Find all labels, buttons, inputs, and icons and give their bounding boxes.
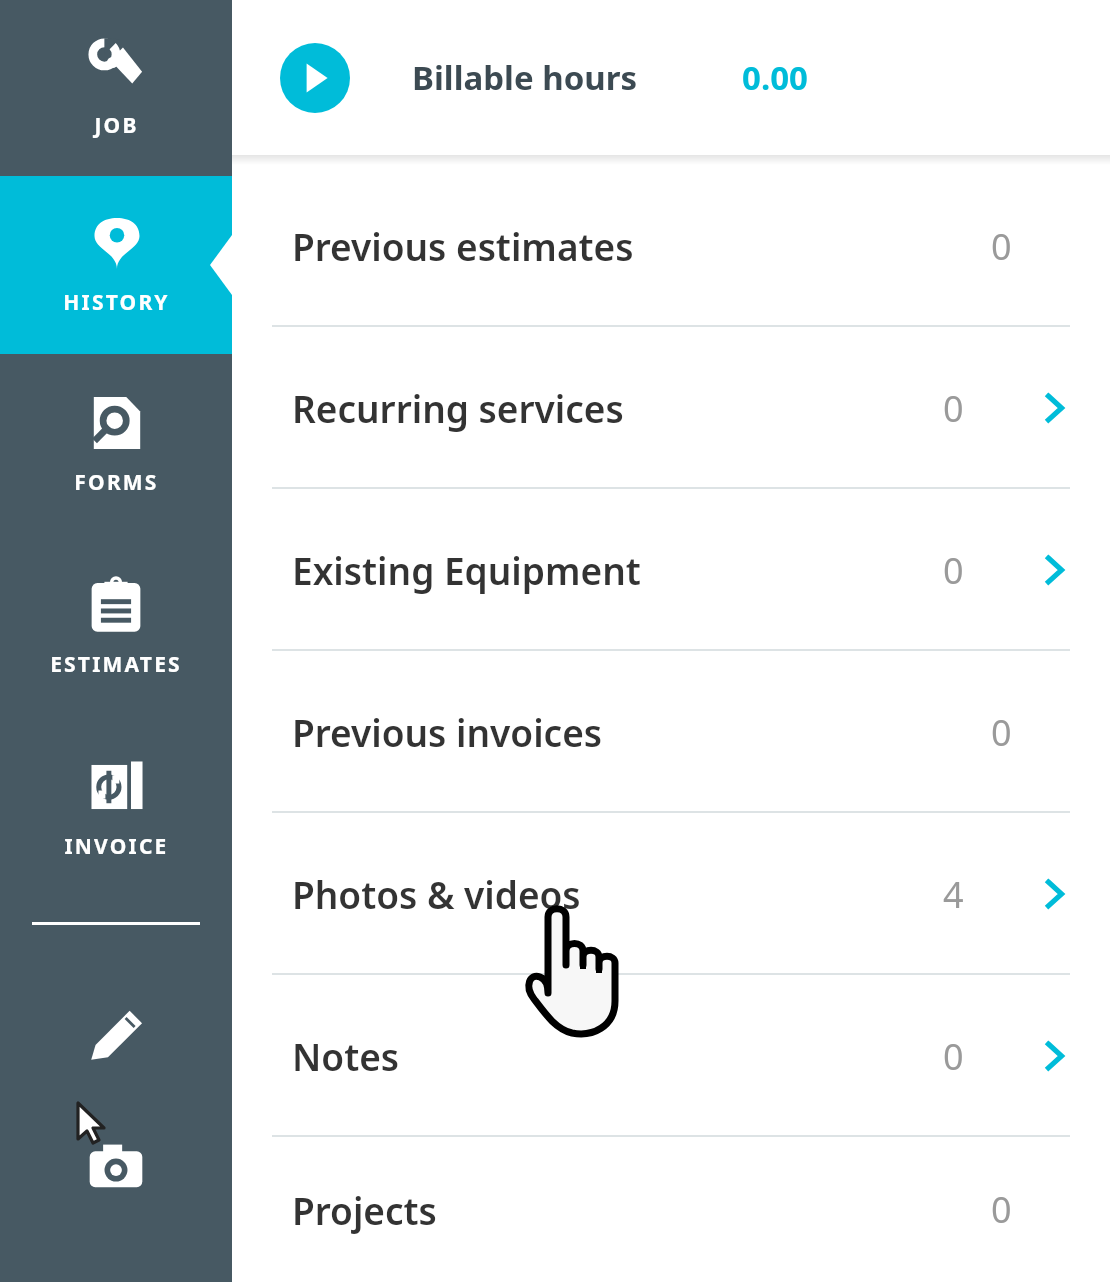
button[interactable]: Start timer [280, 43, 350, 113]
button[interactable]: Previous invoices [232, 651, 1110, 813]
button[interactable]: Edit [0, 975, 232, 1095]
staticText: FORMS [74, 468, 159, 497]
staticText: HISTORY [63, 288, 170, 317]
staticText: 4 [943, 870, 964, 919]
button[interactable]: Projects [232, 1137, 1110, 1282]
button[interactable]: INVOICE [0, 718, 232, 900]
staticText: Existing Equipment [292, 545, 641, 595]
button[interactable]: Previous estimates [232, 165, 1110, 327]
staticText: Previous invoices [292, 707, 603, 757]
staticText: Recurring services [292, 383, 624, 433]
staticText: 0 [991, 222, 1012, 271]
button[interactable]: Photos & videos [232, 813, 1110, 975]
staticText: 0.00 [742, 55, 808, 100]
button[interactable]: ESTIMATES [0, 536, 232, 718]
staticText: Billable hours [412, 55, 638, 100]
button[interactable]: JOB [0, 0, 232, 176]
button[interactable]: Notes [232, 975, 1110, 1137]
staticText: INVOICE [64, 832, 169, 861]
staticText: Photos & videos [292, 869, 581, 919]
staticText: 0 [943, 384, 964, 433]
button[interactable]: Recurring services [232, 327, 1110, 489]
staticText: 0 [943, 546, 964, 595]
button[interactable]: HISTORY [0, 176, 232, 354]
staticText: 0 [991, 1185, 1012, 1234]
staticText: 0 [943, 1032, 964, 1081]
staticText: 0 [991, 708, 1012, 757]
button[interactable]: Existing Equipment [232, 489, 1110, 651]
staticText: JOB [94, 111, 139, 140]
staticText: Projects [292, 1185, 437, 1235]
staticText: ESTIMATES [50, 650, 182, 679]
staticText: Previous estimates [292, 221, 634, 271]
button[interactable]: Camera [0, 1107, 232, 1227]
staticText: Notes [292, 1031, 400, 1081]
button[interactable]: FORMS [0, 354, 232, 536]
